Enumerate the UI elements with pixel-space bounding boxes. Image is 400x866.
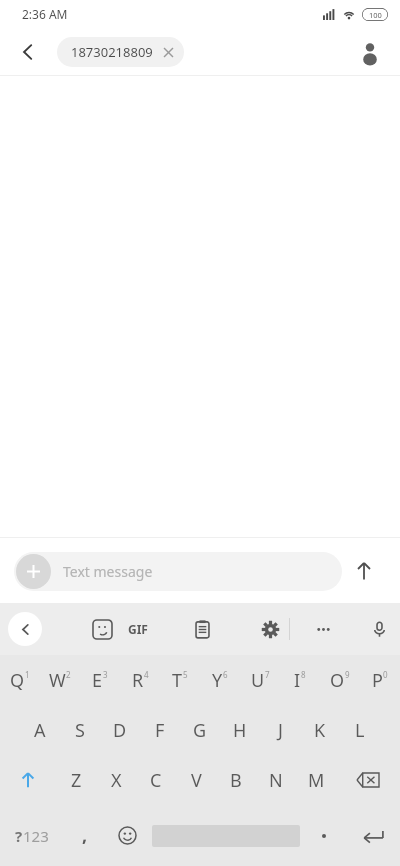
staticText: 2:36 AM [22,6,68,22]
staticText: T [172,668,183,693]
button[interactable]: Contact [350,32,390,72]
button[interactable]: T [160,655,200,705]
staticText: 5 [183,669,188,680]
button[interactable]: Stickers [82,609,122,649]
staticText: A [34,718,46,743]
staticText: 7 [265,669,270,680]
button[interactable]: I [280,655,320,705]
staticText: 1 [25,669,30,680]
button[interactable]: Clipboard [182,609,222,649]
staticText: S [75,718,85,743]
button[interactable]: Attach [14,552,342,591]
button[interactable]: S [60,705,100,755]
staticText: H [233,718,247,743]
staticText: V [191,768,202,793]
button[interactable]: Settings [250,609,290,649]
staticText: R [132,668,144,693]
button[interactable]: , [63,805,106,866]
staticText: 123 [23,826,49,846]
staticText: O [330,668,345,693]
button[interactable]: GIF [118,609,158,649]
staticText: , [82,823,88,848]
button[interactable]: O [320,655,360,705]
button[interactable]: 18730218809 [57,37,184,67]
button[interactable]: J [260,705,300,755]
staticText: D [113,718,127,743]
button[interactable]: B [216,755,256,805]
staticText: N [269,768,283,793]
staticText: Q [10,668,25,693]
button[interactable]: W [40,655,80,705]
staticText: Z [71,768,82,793]
button[interactable]: N [256,755,296,805]
staticText: I [294,668,301,693]
staticText: 18730218809 [71,43,153,61]
button[interactable]: P [360,655,400,705]
staticText: 0 [383,669,388,680]
button[interactable]: A [20,705,60,755]
button[interactable]: Back [8,32,48,72]
staticText: 8 [301,669,306,680]
staticText: 9 [345,669,350,680]
button[interactable]: Send [342,549,386,593]
button[interactable]: Emoji [106,805,149,866]
staticText: F [155,718,165,743]
button[interactable] [302,805,345,866]
button[interactable]: ? [0,805,63,866]
button[interactable]: Q [0,655,40,705]
staticText: B [230,768,242,793]
staticText: 3 [103,669,108,680]
staticText: L [355,718,365,743]
staticText: 100 [369,10,382,20]
staticText: C [150,768,162,793]
button[interactable]: Shift [0,755,56,805]
staticText: E [92,668,103,693]
button[interactable]: U [240,655,280,705]
button[interactable]: K [300,705,340,755]
staticText: Text message [63,562,153,581]
button[interactable]: Attach [16,554,51,589]
button[interactable]: C [136,755,176,805]
staticText: Y [212,668,223,693]
button[interactable]: G [180,705,220,755]
staticText: P [372,668,383,693]
staticText: M [308,768,325,793]
button[interactable]: H [220,705,260,755]
button[interactable]: Space [149,805,302,866]
button[interactable]: V [176,755,216,805]
staticText: X [111,768,122,793]
staticText: ? [15,826,23,846]
staticText: G [193,718,207,743]
button[interactable]: Collapse toolbar [8,612,42,646]
staticText: GIF [128,621,148,637]
button[interactable]: X [96,755,136,805]
button[interactable]: Z [56,755,96,805]
staticText: J [278,718,283,743]
staticText: 6 [223,669,228,680]
button[interactable]: F [140,705,180,755]
staticText: 2 [66,669,71,680]
staticText: W [49,668,66,693]
button[interactable]: D [100,705,140,755]
button[interactable]: Y [200,655,240,705]
button[interactable]: R [120,655,160,705]
staticText: U [251,668,265,693]
staticText: 4 [144,669,149,680]
button[interactable]: L [340,705,380,755]
button[interactable]: E [80,655,120,705]
button[interactable]: Enter [345,805,400,866]
staticText: K [314,718,326,743]
button[interactable]: Voice input [359,609,399,649]
button[interactable]: M [296,755,336,805]
button[interactable]: Backspace [336,755,400,805]
button[interactable]: More options [303,609,343,649]
